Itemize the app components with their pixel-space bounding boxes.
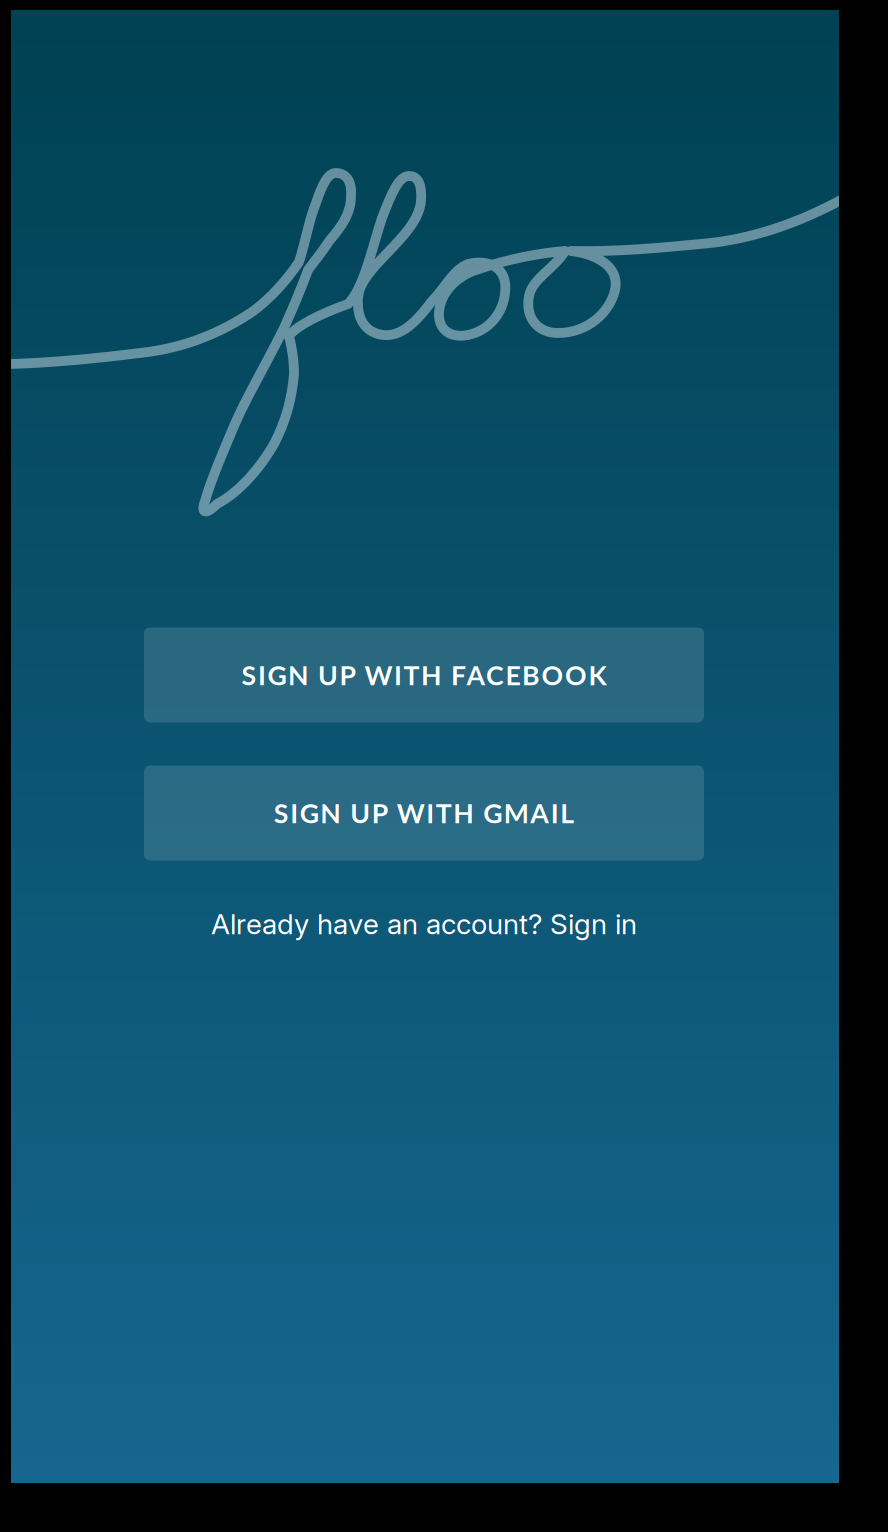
staticText: Already have an account? Sign in	[211, 907, 637, 941]
button[interactable]: SIGN UP WITH FACEBOOK	[144, 627, 704, 722]
staticText: SIGN UP WITH GMAIL	[274, 797, 574, 829]
button[interactable]: Already have an account? Sign in	[144, 896, 704, 952]
staticText: SIGN UP WITH FACEBOOK	[241, 659, 606, 691]
button[interactable]: SIGN UP WITH GMAIL	[144, 765, 704, 860]
